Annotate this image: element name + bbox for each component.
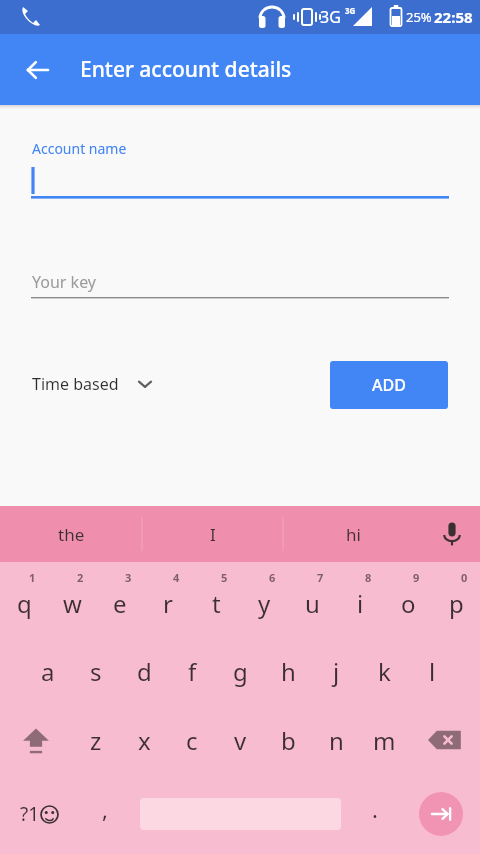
- button[interactable]: ?1: [0, 774, 78, 854]
- button[interactable]: c: [168, 706, 216, 774]
- button[interactable]: h: [264, 636, 312, 706]
- staticText: ?1: [20, 801, 40, 827]
- staticText: 0: [461, 570, 468, 585]
- button[interactable]: x: [120, 706, 168, 774]
- staticText: z: [90, 724, 102, 757]
- staticText: m: [373, 724, 396, 757]
- staticText: 3: [125, 570, 132, 585]
- button[interactable]: Voice input: [424, 506, 480, 562]
- button[interactable]: z: [72, 706, 120, 774]
- staticText: 7: [317, 570, 324, 585]
- staticText: h: [281, 655, 296, 688]
- staticText: .: [372, 794, 378, 824]
- staticText: 25%: [406, 8, 432, 26]
- staticText: v: [234, 724, 247, 757]
- staticText: f: [188, 655, 197, 688]
- staticText: I: [210, 523, 216, 546]
- staticText: t: [212, 587, 221, 620]
- staticText: d: [137, 655, 152, 688]
- staticText: y: [258, 587, 271, 620]
- button[interactable]: g: [216, 636, 264, 706]
- staticText: e: [113, 587, 127, 620]
- button[interactable]: 9: [384, 562, 432, 636]
- button[interactable]: m: [360, 706, 408, 774]
- button[interactable]: the: [0, 506, 142, 562]
- staticText: r: [163, 587, 173, 620]
- button[interactable]: 3: [96, 562, 144, 636]
- staticText: 9: [413, 570, 420, 585]
- button[interactable]: Back: [14, 46, 62, 94]
- button[interactable]: ADD: [330, 361, 448, 409]
- button[interactable]: 0: [432, 562, 480, 636]
- staticText: n: [329, 724, 344, 757]
- staticText: k: [378, 655, 391, 688]
- button[interactable]: v: [216, 706, 264, 774]
- button[interactable]: b: [264, 706, 312, 774]
- staticText: 2: [77, 570, 84, 585]
- button[interactable]: a: [24, 636, 72, 706]
- button[interactable]: Enter: [419, 792, 463, 836]
- staticText: 5: [221, 570, 228, 585]
- staticText: 6: [269, 570, 276, 585]
- staticText: j: [333, 655, 340, 688]
- staticText: 22:58: [434, 7, 473, 27]
- staticText: b: [281, 724, 296, 757]
- staticText: a: [41, 655, 55, 688]
- staticText: 1: [29, 570, 36, 585]
- staticText: o: [401, 587, 416, 620]
- button[interactable]: 7: [288, 562, 336, 636]
- staticText: g: [233, 655, 248, 688]
- button[interactable]: 4: [144, 562, 192, 636]
- staticText: Enter account details: [80, 55, 292, 84]
- button[interactable]: 1: [0, 562, 48, 636]
- button[interactable]: f: [168, 636, 216, 706]
- staticText: 4: [173, 570, 180, 585]
- button[interactable]: n: [312, 706, 360, 774]
- staticText: 3G: [320, 6, 341, 28]
- button[interactable]: 8: [336, 562, 384, 636]
- staticText: Your key: [32, 271, 97, 293]
- button[interactable]: k: [360, 636, 408, 706]
- staticText: the: [58, 523, 85, 546]
- button[interactable]: hi: [283, 506, 424, 562]
- staticText: Account name: [32, 139, 127, 158]
- staticText: ADD: [372, 374, 406, 396]
- staticText: s: [90, 655, 102, 688]
- staticText: c: [186, 724, 198, 757]
- staticText: hi: [346, 523, 361, 546]
- staticText: 8: [365, 570, 372, 585]
- button[interactable]: d: [120, 636, 168, 706]
- staticText: w: [63, 587, 82, 620]
- staticText: 3G: [345, 5, 356, 16]
- staticText: ,: [102, 794, 108, 824]
- button[interactable]: 2: [48, 562, 96, 636]
- staticText: p: [449, 587, 464, 620]
- button[interactable]: Time based: [32, 373, 153, 395]
- button[interactable]: j: [312, 636, 360, 706]
- staticText: l: [429, 655, 436, 688]
- button[interactable]: Backspace: [408, 706, 480, 774]
- button[interactable]: .: [348, 774, 402, 854]
- staticText: q: [17, 587, 32, 620]
- button[interactable]: I: [142, 506, 283, 562]
- button[interactable]: 6: [240, 562, 288, 636]
- staticText: x: [138, 724, 151, 757]
- button[interactable]: ,: [78, 774, 132, 854]
- button[interactable]: s: [72, 636, 120, 706]
- button[interactable]: 5: [192, 562, 240, 636]
- staticText: Time based: [32, 373, 119, 395]
- button[interactable]: l: [408, 636, 456, 706]
- staticText: u: [305, 587, 320, 620]
- staticText: i: [357, 587, 364, 620]
- button[interactable]: Shift: [0, 706, 72, 774]
